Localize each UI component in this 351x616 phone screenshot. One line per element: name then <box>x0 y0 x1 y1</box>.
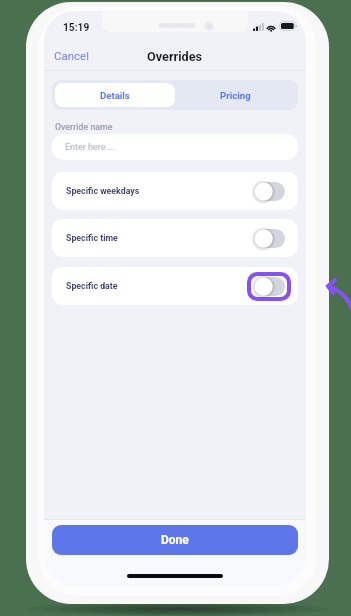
staticText: Override name <box>55 122 113 132</box>
button[interactable]: Done <box>52 525 298 555</box>
staticText: Enter here ... <box>65 142 115 153</box>
button[interactable]: Details <box>55 83 175 107</box>
staticText: Specific time <box>66 233 118 243</box>
staticText: Pricing <box>220 90 251 101</box>
staticText: Specific weekdays <box>66 186 140 196</box>
staticText: 15:19 <box>63 22 90 34</box>
button[interactable]: Specific date <box>52 267 298 305</box>
button[interactable]: Specific time <box>52 219 298 257</box>
staticText: Done <box>161 533 189 547</box>
button[interactable]: Specific weekdays toggle <box>247 177 291 206</box>
staticText: Overrides <box>147 49 203 64</box>
staticText: Cancel <box>54 49 90 62</box>
staticText: Specific date <box>66 281 118 291</box>
staticText: Details <box>100 90 130 101</box>
button[interactable]: Specific date toggle <box>247 272 291 301</box>
button[interactable]: Pricing <box>175 83 295 107</box>
button[interactable]: Specific time toggle <box>247 224 291 253</box>
button[interactable]: Enter here ... <box>52 134 298 160</box>
button[interactable]: Specific weekdays <box>52 172 298 210</box>
button[interactable]: Cancel <box>50 44 94 67</box>
